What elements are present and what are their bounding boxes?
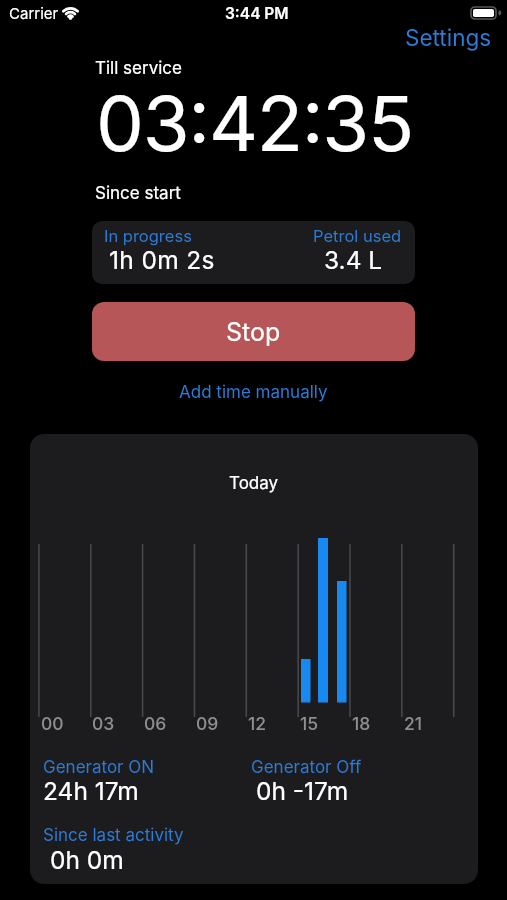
staticText: 06 xyxy=(144,713,167,734)
staticText: 15 xyxy=(300,713,319,734)
staticText: 18 xyxy=(352,713,371,734)
staticText: 3:44 PM xyxy=(225,4,289,23)
staticText: Stop xyxy=(226,317,281,347)
staticText: In progress xyxy=(104,226,192,246)
staticText: Settings xyxy=(405,24,492,51)
staticText: Add time manually xyxy=(179,382,328,403)
staticText: Since start xyxy=(95,183,181,204)
staticText: 09 xyxy=(196,713,219,734)
staticText: 03 xyxy=(92,713,115,734)
staticText: Today xyxy=(229,473,279,494)
staticText: Till service xyxy=(95,58,182,79)
staticText: 0h -17m xyxy=(256,776,349,806)
staticText: 3.4 L xyxy=(324,245,383,275)
staticText: 1h 0m 2s xyxy=(109,245,215,275)
staticText: 0h 0m xyxy=(50,845,124,875)
staticText: 21 xyxy=(404,713,423,734)
staticText: Generator Off xyxy=(251,757,362,778)
staticText: Since last activity xyxy=(43,825,184,846)
staticText: Generator ON xyxy=(43,757,155,778)
staticText: Carrier xyxy=(9,4,59,22)
staticText: Petrol used xyxy=(313,226,402,246)
staticText: 03:42:35 xyxy=(96,77,413,169)
staticText: 24h 17m xyxy=(43,776,139,806)
staticText: 00 xyxy=(41,713,64,734)
staticText: 12 xyxy=(248,713,267,734)
